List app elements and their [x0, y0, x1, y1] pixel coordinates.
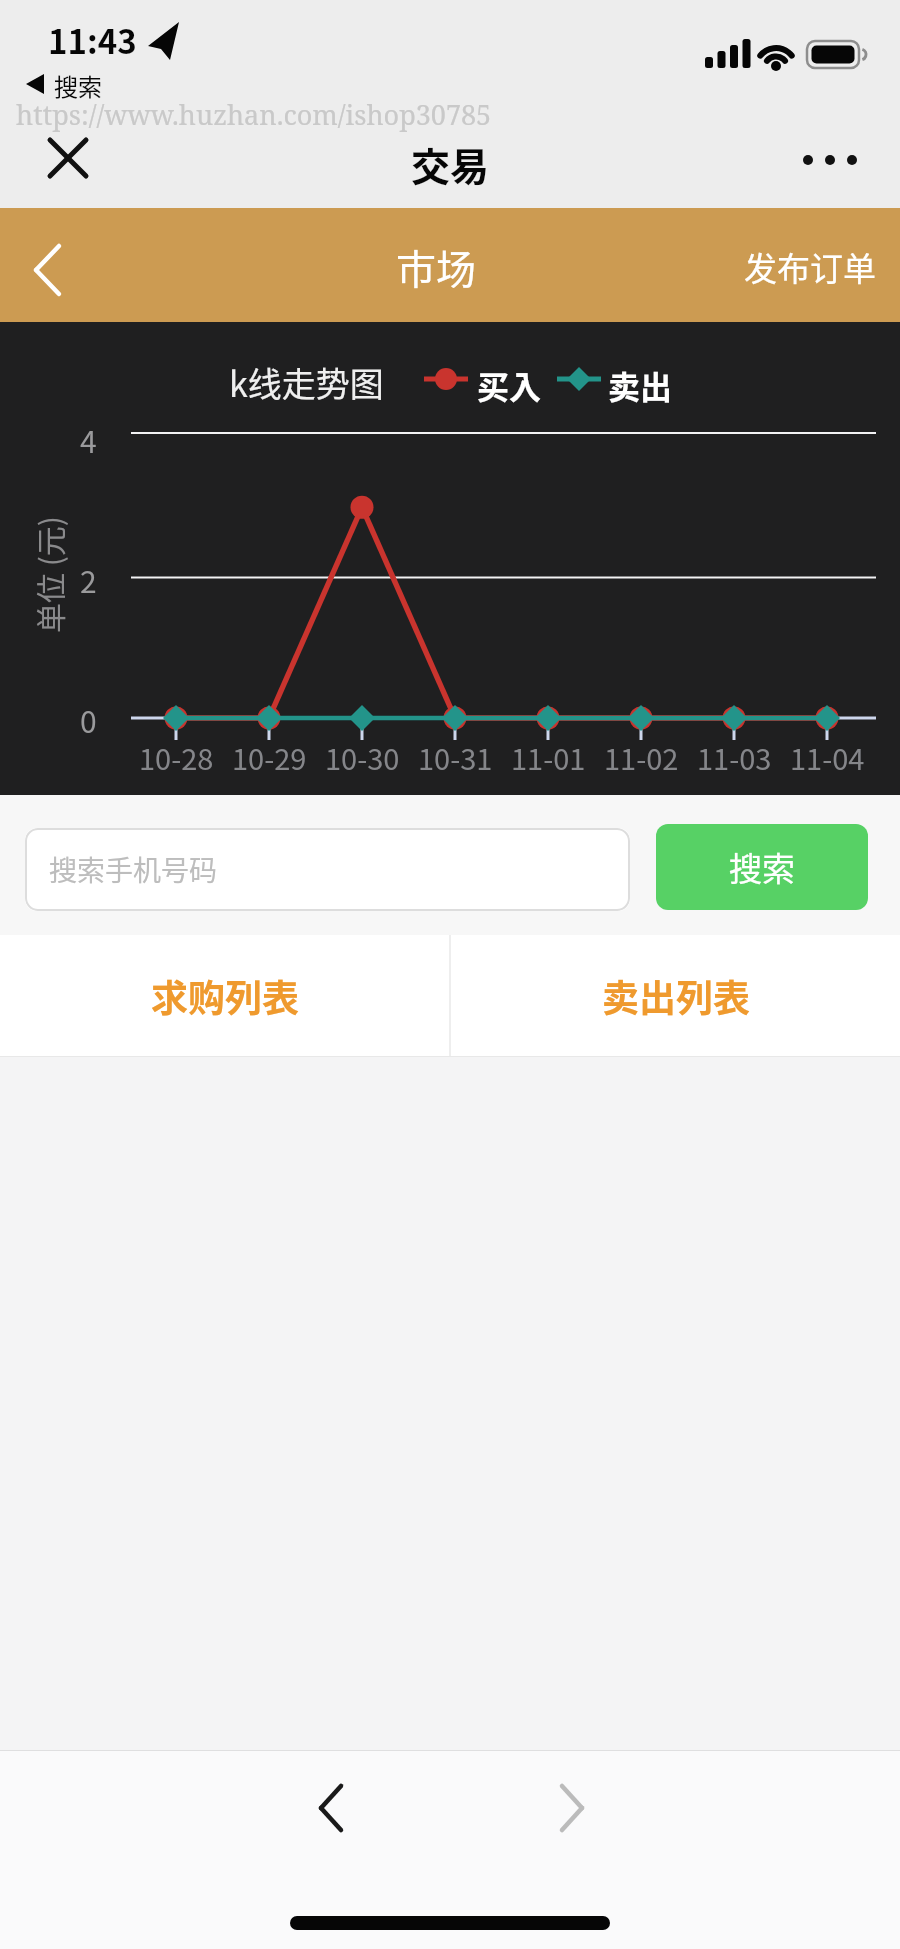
button[interactable] — [20, 244, 76, 300]
staticText: 卖出列表 — [602, 969, 750, 1023]
staticText: 求购列表 — [151, 969, 299, 1023]
staticText: 10-28 — [139, 736, 214, 778]
staticText: https://www.huzhan.com/ishop30785 — [16, 96, 492, 133]
staticText: 搜索 — [54, 68, 102, 103]
button[interactable]: 搜索 — [656, 824, 868, 910]
staticText: 0 — [80, 698, 97, 741]
button[interactable]: 求购列表 — [0, 935, 449, 1056]
staticText: 单位 (元) — [27, 516, 70, 633]
staticText: 2 — [80, 558, 97, 601]
staticText: 搜索手机号码 — [49, 849, 218, 890]
button[interactable]: 卖出列表 — [451, 935, 900, 1056]
staticText: 10-31 — [418, 736, 493, 778]
button[interactable] — [40, 132, 96, 188]
staticText: 11-02 — [604, 736, 679, 778]
staticText: 搜索 — [729, 843, 795, 891]
button[interactable] — [796, 140, 866, 180]
staticText: 11-03 — [697, 736, 772, 778]
staticText: 市场 — [396, 238, 476, 296]
staticText: 4 — [80, 418, 97, 461]
button[interactable] — [542, 1780, 598, 1836]
staticText: 11-04 — [790, 736, 865, 778]
staticText: 11-01 — [511, 736, 586, 778]
staticText: 交易 — [411, 136, 490, 192]
button[interactable]: 发布订单 — [744, 243, 876, 291]
staticText: 买入 — [477, 362, 542, 408]
staticText: 10-29 — [232, 736, 307, 778]
staticText: 卖出 — [608, 362, 673, 408]
staticText: 11:43 — [48, 16, 137, 64]
button[interactable] — [305, 1780, 361, 1836]
staticText: 发布订单 — [744, 243, 876, 291]
button[interactable]: 搜索手机号码 — [25, 828, 630, 911]
staticText: 10-30 — [325, 736, 400, 778]
staticText: k线走势图 — [229, 358, 384, 407]
